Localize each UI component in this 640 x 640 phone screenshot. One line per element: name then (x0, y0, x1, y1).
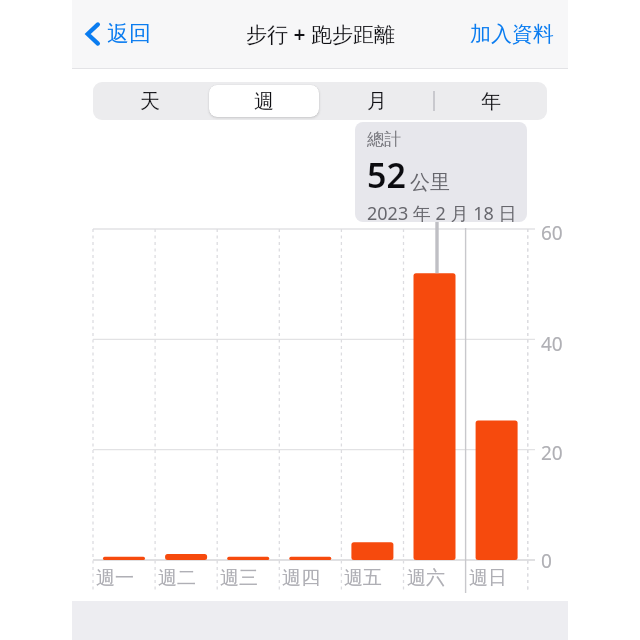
staticText: 週一 (96, 566, 134, 590)
staticText: 返回 (107, 20, 151, 48)
staticText: 2023 年 2 月 18 日 (367, 201, 517, 222)
button[interactable]: 年 (436, 85, 546, 117)
button[interactable]: 月 (322, 85, 432, 117)
button[interactable]: 週 (209, 85, 319, 117)
button[interactable]: 天 (95, 85, 205, 117)
staticText: 步行 + 跑步距離 (246, 20, 395, 49)
staticText: 加入資料 (470, 21, 554, 47)
staticText: 20 (541, 440, 563, 466)
staticText: 週三 (220, 566, 258, 590)
button[interactable]: 總計 (355, 122, 527, 222)
staticText: 週六 (407, 566, 445, 590)
staticText: 年 (481, 89, 501, 114)
staticText: 總計 (367, 129, 401, 150)
staticText: 天 (140, 89, 160, 114)
staticText: 週日 (469, 566, 507, 590)
staticText: 月 (367, 89, 387, 114)
staticText: 週二 (158, 566, 196, 590)
button[interactable]: 返回 (80, 14, 157, 54)
staticText: 60 (541, 220, 563, 246)
button[interactable]: 加入資料 (466, 15, 558, 53)
staticText: 40 (541, 331, 563, 357)
staticText: 週四 (282, 566, 320, 590)
staticText: 公里 (410, 170, 450, 195)
staticText: 52 (367, 152, 406, 198)
staticText: 週五 (344, 566, 382, 590)
staticText: 0 (541, 548, 552, 574)
staticText: 週 (254, 89, 274, 114)
